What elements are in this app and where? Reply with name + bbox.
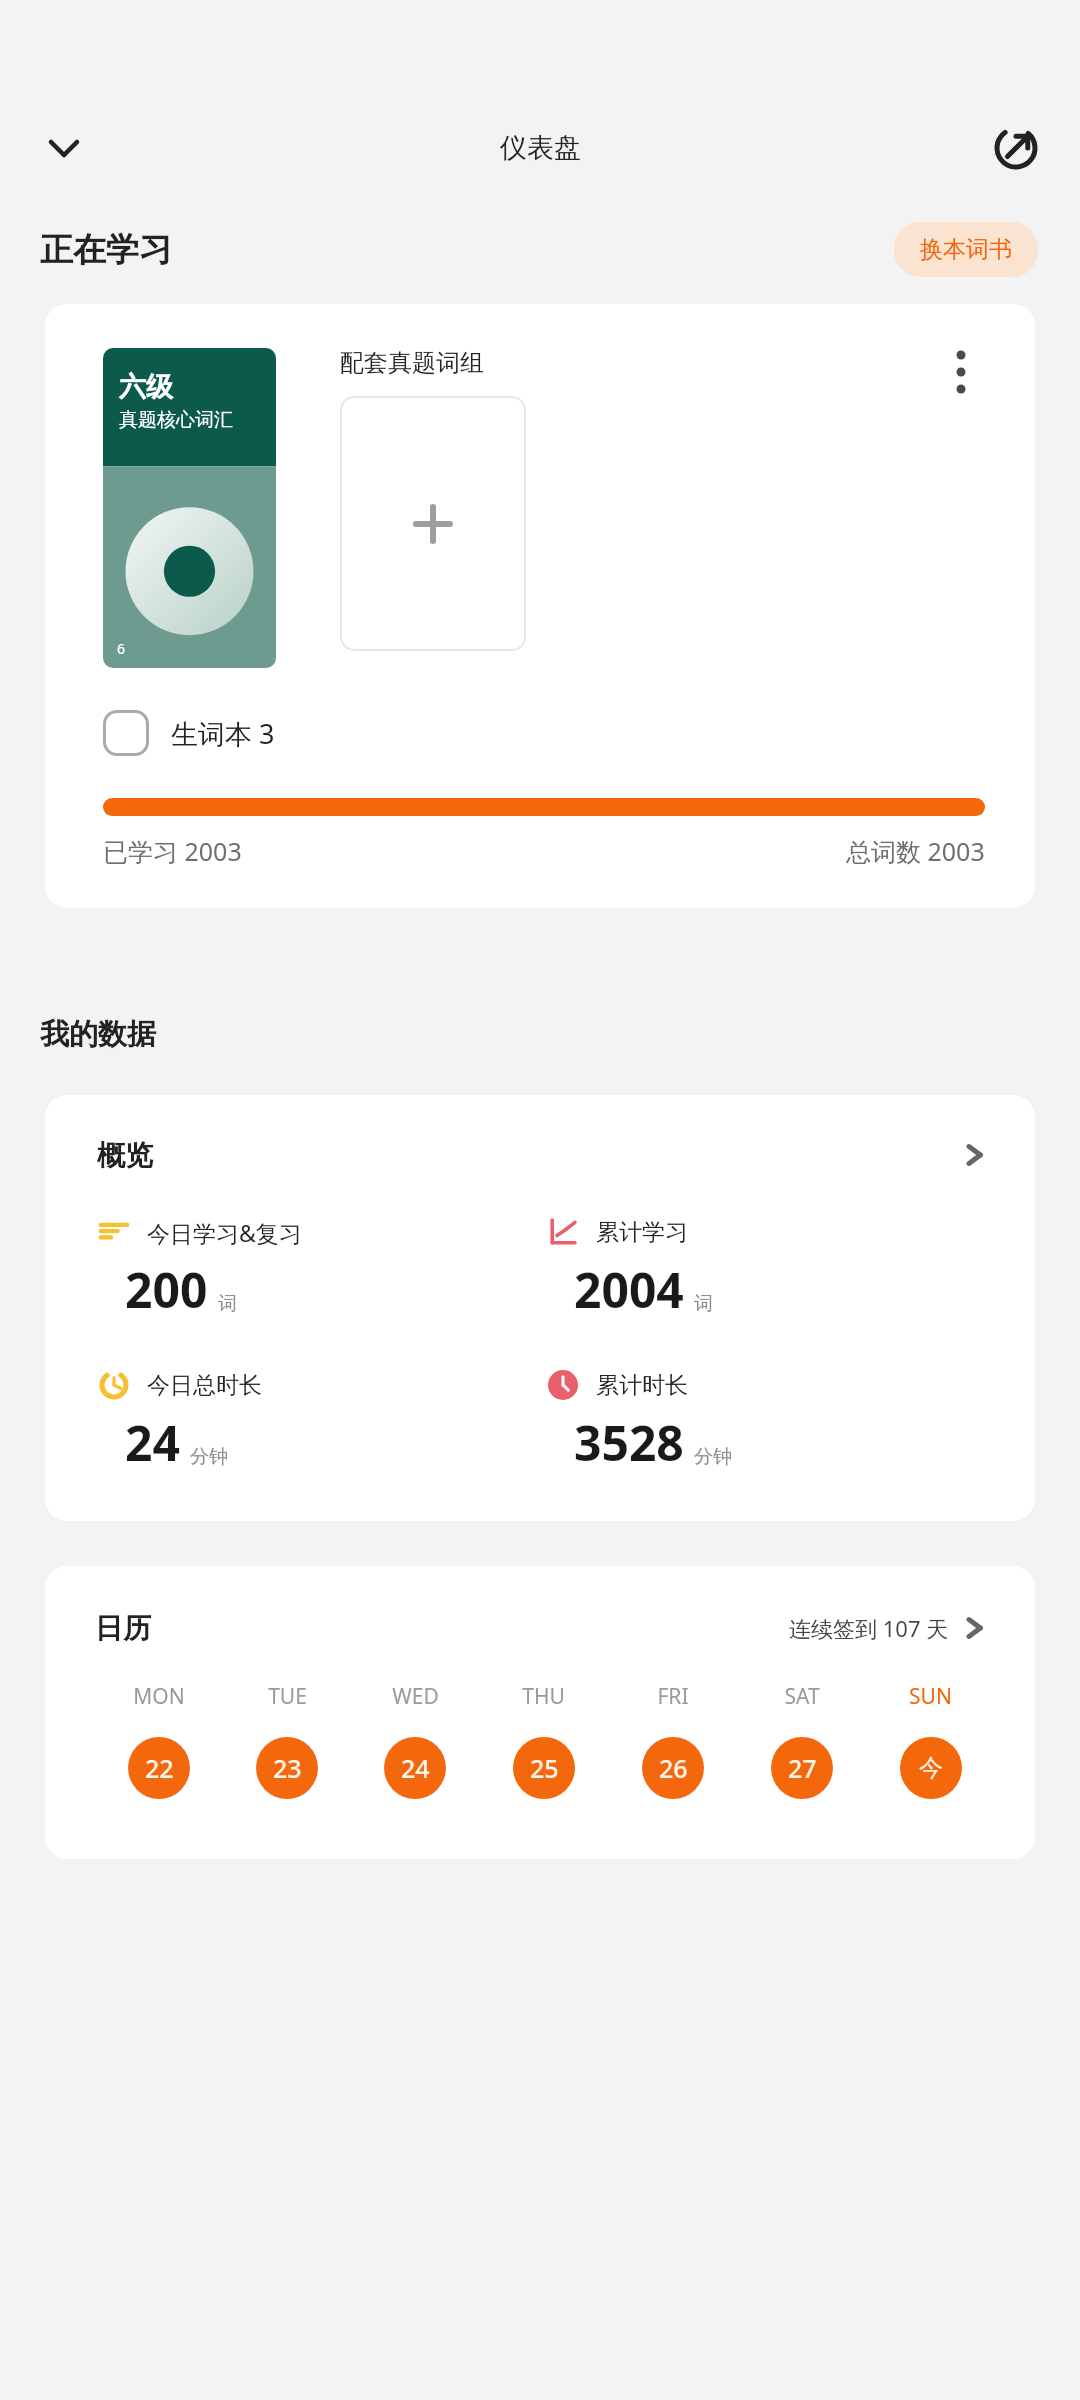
staticText: 200 — [125, 1257, 208, 1322]
button[interactable]: 概览 — [97, 1135, 995, 1175]
staticText: 24 — [401, 1751, 430, 1785]
button[interactable]: SAT — [737, 1682, 866, 1799]
button[interactable]: Collapse — [42, 126, 86, 170]
button[interactable]: THU — [479, 1682, 608, 1799]
staticText: 累计学习 — [596, 1218, 688, 1247]
staticText: 配套真题词组 — [340, 348, 484, 378]
staticText: 仪表盘 — [500, 131, 581, 165]
button[interactable]: WED — [351, 1682, 479, 1799]
staticText: 概览 — [97, 1138, 153, 1173]
button[interactable]: SUN — [866, 1682, 995, 1799]
button[interactable]: 换本词书 — [894, 222, 1038, 277]
staticText: 总词数 2003 — [846, 834, 985, 868]
staticText: 今 — [919, 1753, 943, 1783]
button[interactable]: Add — [340, 396, 526, 651]
staticText: 已学习 2003 — [103, 834, 242, 868]
button[interactable]: More — [955, 1608, 995, 1648]
staticText: 词 — [694, 1292, 713, 1316]
button[interactable]: More — [955, 1135, 995, 1175]
staticText: 22 — [145, 1751, 174, 1785]
staticText: 分钟 — [694, 1445, 732, 1469]
staticText: 今日总时长 — [147, 1371, 262, 1400]
staticText: 词 — [218, 1292, 237, 1316]
button[interactable]: 今日学习&复习 — [97, 1215, 546, 1322]
staticText: 生词本 3 — [171, 715, 275, 752]
button[interactable]: TUE — [223, 1682, 351, 1799]
staticText: 24 — [125, 1410, 180, 1475]
staticText: FRI — [657, 1682, 689, 1711]
button[interactable]: 累计时长 — [546, 1368, 995, 1475]
staticText: 25 — [530, 1751, 559, 1785]
staticText: 我的数据 — [40, 1016, 156, 1053]
staticText: 正在学习 — [40, 229, 172, 271]
staticText: 真题核心词汇 — [119, 408, 233, 432]
staticText: 26 — [659, 1751, 688, 1785]
staticText: 连续签到 107 天 — [789, 1613, 949, 1643]
staticText: THU — [522, 1682, 565, 1711]
staticText: 六级 — [119, 370, 173, 404]
staticText: 3528 — [574, 1410, 684, 1475]
button[interactable]: 累计学习 — [546, 1215, 995, 1322]
button[interactable]: MON — [95, 1682, 223, 1799]
button[interactable]: 今日总时长 — [97, 1368, 546, 1475]
staticText: WED — [392, 1682, 439, 1711]
staticText: 6 — [117, 639, 126, 658]
staticText: TUE — [268, 1682, 307, 1711]
staticText: MON — [133, 1682, 185, 1711]
staticText: SAT — [784, 1682, 820, 1711]
staticText: 23 — [273, 1751, 302, 1785]
staticText: 日历 — [95, 1611, 151, 1646]
button[interactable]: 日历 — [95, 1608, 995, 1648]
staticText: 2004 — [574, 1257, 684, 1322]
staticText: 27 — [788, 1751, 817, 1785]
button[interactable]: 生词本 3 — [103, 710, 275, 756]
button[interactable]: 六级 — [103, 348, 276, 668]
staticText: 累计时长 — [596, 1371, 688, 1400]
staticText: 换本词书 — [920, 235, 1012, 264]
button[interactable]: 六级 — [45, 304, 1035, 908]
button[interactable]: Share — [992, 124, 1040, 172]
staticText: SUN — [909, 1682, 952, 1711]
staticText: 今日学习&复习 — [147, 1217, 302, 1248]
staticText: 分钟 — [190, 1445, 228, 1469]
button[interactable]: More options — [937, 348, 985, 396]
button[interactable]: FRI — [608, 1682, 737, 1799]
